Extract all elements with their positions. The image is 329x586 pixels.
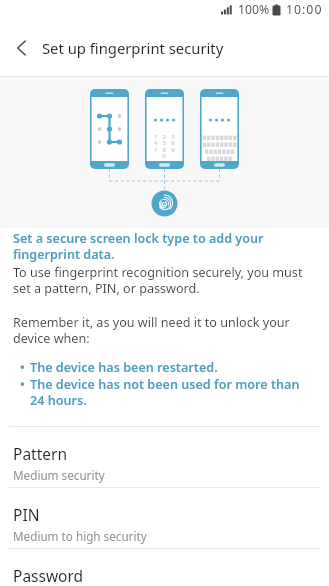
staticText: PIN xyxy=(13,504,40,525)
staticText: Password xyxy=(13,565,84,586)
staticText: The device has not been used for more th… xyxy=(30,376,300,409)
staticText: Medium security xyxy=(13,467,105,483)
staticText: 100% xyxy=(238,1,270,18)
staticText: • xyxy=(20,376,25,393)
staticText: Set a secure screen lock type to add you… xyxy=(13,230,264,263)
staticText: • xyxy=(20,359,25,376)
button[interactable]: PIN xyxy=(0,488,329,548)
staticText: Remember it, as you will need it to unlo… xyxy=(13,314,290,347)
staticText: Medium to high security xyxy=(13,528,147,544)
staticText: Pattern xyxy=(13,443,67,464)
staticText: 10:00 xyxy=(286,1,323,18)
button[interactable]: Pattern xyxy=(0,427,329,487)
staticText: Set up fingerprint security xyxy=(42,38,224,58)
button[interactable]: Password xyxy=(0,549,329,586)
staticText: The device has been restarted. xyxy=(30,359,218,376)
button[interactable] xyxy=(0,20,42,76)
staticText: To use fingerprint recognition securely,… xyxy=(13,264,303,297)
